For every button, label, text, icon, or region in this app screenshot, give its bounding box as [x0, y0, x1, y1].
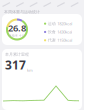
staticText: km [27, 67, 33, 73]
button[interactable]: Trend [43, 2, 57, 7]
button[interactable]: Trend [70, 2, 84, 7]
staticText: 1150kcal [57, 38, 72, 43]
staticText: 体脂率 今日 [9, 34, 25, 37]
staticText: 本周体重与运动统计 [4, 9, 40, 14]
button[interactable]: Trend [57, 2, 70, 7]
staticText: 代谢 [48, 38, 56, 43]
staticText: 26.8 [8, 22, 26, 34]
staticText: 饮食 [48, 29, 56, 34]
staticText: 1820kcal [57, 21, 72, 26]
staticText: 运动 [48, 21, 56, 26]
staticText: 317 [5, 57, 26, 73]
button[interactable]: Trend [2, 2, 16, 7]
staticText: 1430kcal [57, 29, 72, 35]
button[interactable]: Trend [29, 2, 43, 7]
staticText: 本月累计里程 [5, 52, 29, 57]
button[interactable]: Trend [16, 2, 29, 7]
